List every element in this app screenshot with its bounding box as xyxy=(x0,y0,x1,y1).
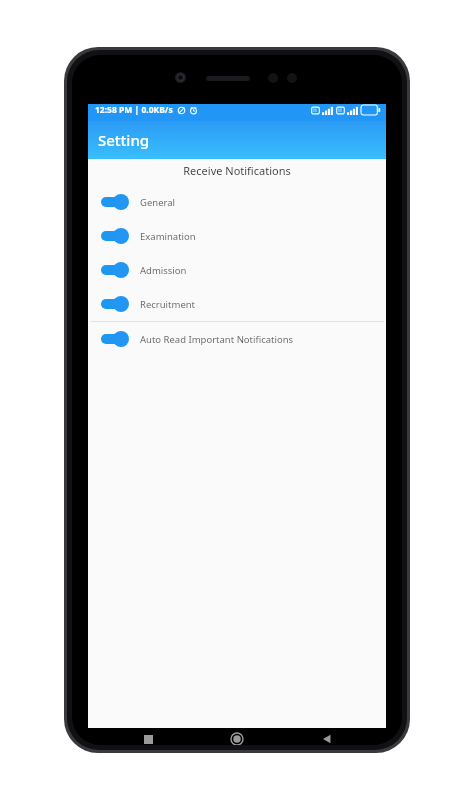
staticText: Receive Notifications xyxy=(88,163,386,178)
button[interactable]: Toggle on xyxy=(101,194,129,210)
button[interactable]: Home xyxy=(207,728,267,745)
button[interactable]: Toggle on xyxy=(88,287,386,321)
staticText: General xyxy=(140,196,176,209)
staticText: 12:58 PM | 0.0KB/s xyxy=(95,104,173,116)
button[interactable]: Toggle on xyxy=(88,253,386,287)
button[interactable]: Toggle on xyxy=(88,185,386,219)
button[interactable]: Toggle on xyxy=(88,322,386,356)
button[interactable]: Back xyxy=(297,728,357,745)
button[interactable]: Toggle on xyxy=(101,296,129,312)
staticText: Auto Read Important Notifications xyxy=(140,333,294,346)
button[interactable]: Toggle on xyxy=(101,262,129,278)
button[interactable]: Toggle on xyxy=(101,331,129,347)
button[interactable]: Toggle on xyxy=(88,219,386,253)
staticText: Examination xyxy=(140,230,196,243)
staticText: Setting xyxy=(98,130,150,150)
button[interactable]: Toggle on xyxy=(101,228,129,244)
button[interactable]: Recents xyxy=(118,728,178,745)
staticText: Admission xyxy=(140,264,187,277)
staticText: Recruitment xyxy=(140,298,196,311)
